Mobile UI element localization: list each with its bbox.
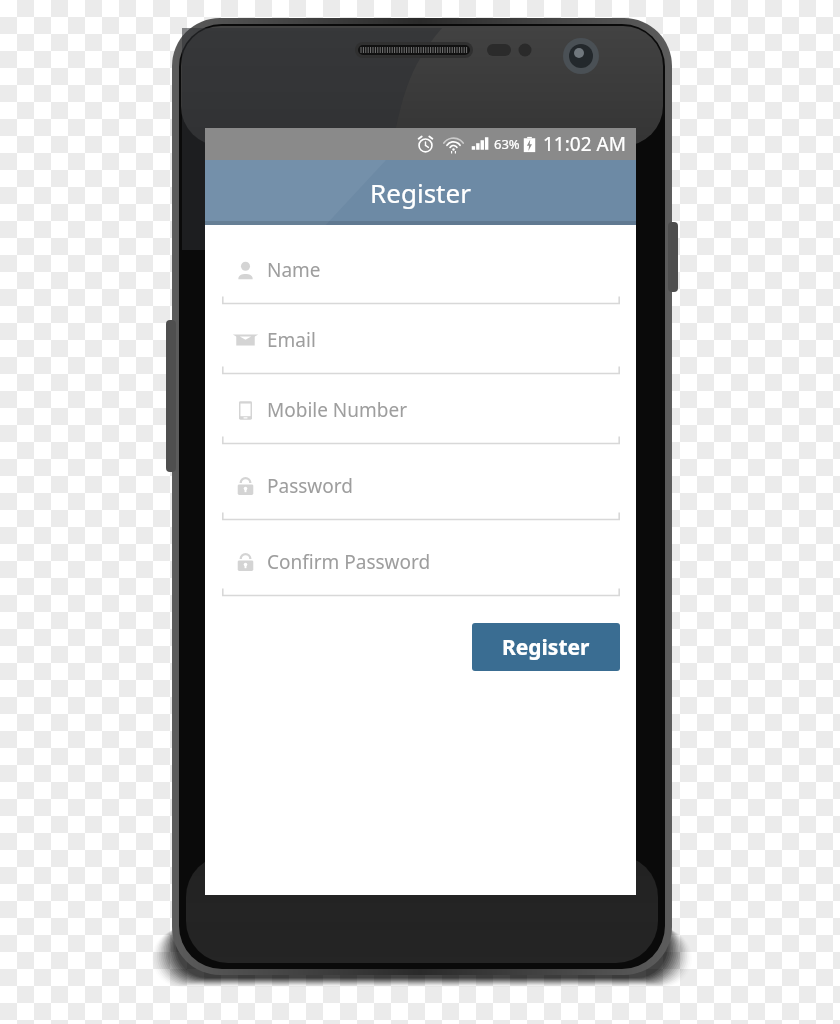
button[interactable]: Mobile Number	[222, 393, 620, 445]
staticText: Email	[267, 327, 316, 353]
button[interactable]: Confirm Password	[222, 545, 620, 597]
staticText: 63%	[494, 135, 520, 153]
staticText: 11:02 AM	[543, 131, 626, 157]
button[interactable]: Password	[222, 469, 620, 521]
staticText: Register	[370, 175, 471, 210]
staticText: Confirm Password	[267, 549, 431, 575]
staticText: Register	[502, 633, 590, 662]
staticText: Password	[267, 473, 353, 499]
staticText: Mobile Number	[267, 397, 408, 423]
button[interactable]: Register	[472, 623, 620, 671]
button[interactable]: Email	[222, 323, 620, 375]
staticText: Name	[267, 257, 321, 283]
button[interactable]: Name	[222, 253, 620, 305]
